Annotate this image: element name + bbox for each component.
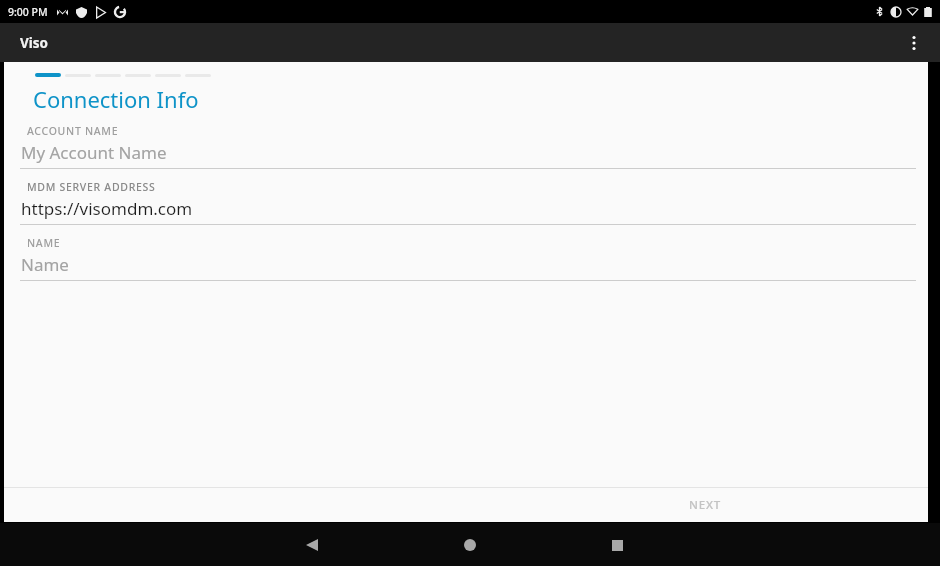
staticText: Connection Info bbox=[33, 84, 199, 114]
button[interactable]: My Account Name bbox=[4, 141, 928, 168]
button[interactable]: Back bbox=[292, 525, 332, 565]
staticText: NEXT bbox=[689, 497, 722, 513]
button[interactable]: https://visomdm.com bbox=[4, 197, 928, 224]
staticText: 9:00 PM bbox=[8, 5, 48, 19]
staticText: ACCOUNT NAME bbox=[27, 124, 119, 138]
staticText: NAME bbox=[27, 236, 61, 250]
button[interactable]: Home bbox=[450, 525, 490, 565]
button[interactable]: More options bbox=[896, 25, 932, 61]
button[interactable]: Recent apps bbox=[597, 525, 637, 565]
staticText: MDM SERVER ADDRESS bbox=[27, 180, 156, 194]
button[interactable]: NEXT bbox=[675, 491, 736, 519]
button[interactable]: Name bbox=[4, 253, 928, 280]
staticText: Viso bbox=[20, 34, 49, 52]
